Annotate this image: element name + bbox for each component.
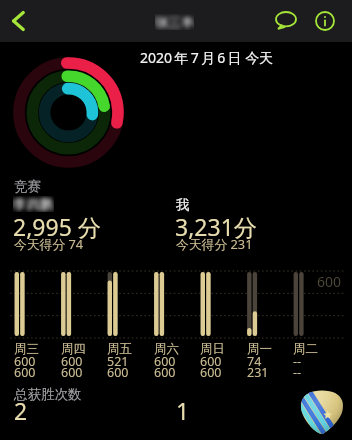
staticText: 周五: [107, 341, 132, 357]
staticText: 600: [14, 364, 36, 381]
staticText: 600: [200, 353, 222, 370]
staticText: 521: [107, 353, 129, 370]
staticText: 3,231分: [175, 211, 257, 242]
staticText: 2: [14, 395, 28, 426]
staticText: 1: [176, 395, 190, 426]
staticText: 600: [154, 364, 176, 381]
staticText: 总获胜次数: [14, 386, 82, 403]
staticText: --: [293, 364, 302, 381]
staticText: 600: [317, 272, 342, 291]
staticText: --: [293, 353, 302, 370]
button[interactable]: Messages: [269, 4, 303, 38]
staticText: 李四鹏: [13, 196, 54, 212]
staticText: 今天得分 74: [14, 235, 84, 252]
staticText: 周三: [14, 341, 39, 357]
staticText: 竞赛: [14, 178, 41, 195]
staticText: 周一: [247, 341, 272, 357]
staticText: 600: [14, 353, 36, 370]
staticText: 周日: [200, 341, 225, 357]
staticText: 我: [176, 196, 190, 213]
staticText: 周二: [293, 341, 318, 357]
staticText: 周六: [154, 341, 179, 357]
staticText: 今天得分 231: [176, 235, 253, 252]
button[interactable]: Award badge: [300, 390, 344, 434]
button[interactable]: Info: [308, 4, 342, 38]
staticText: 2,995 分: [13, 211, 101, 242]
staticText: 231: [247, 364, 269, 381]
button[interactable]: Back: [0, 0, 40, 42]
staticText: 600: [107, 364, 129, 381]
staticText: 周四: [61, 341, 86, 357]
staticText: 600: [200, 364, 222, 381]
staticText: 74: [247, 353, 262, 370]
staticText: 600: [61, 353, 83, 370]
staticText: 600: [61, 364, 83, 381]
staticText: 张三丰: [155, 14, 194, 30]
staticText: 2020 年 7 月 6 日 今天: [140, 48, 274, 67]
staticText: 600: [154, 353, 176, 370]
